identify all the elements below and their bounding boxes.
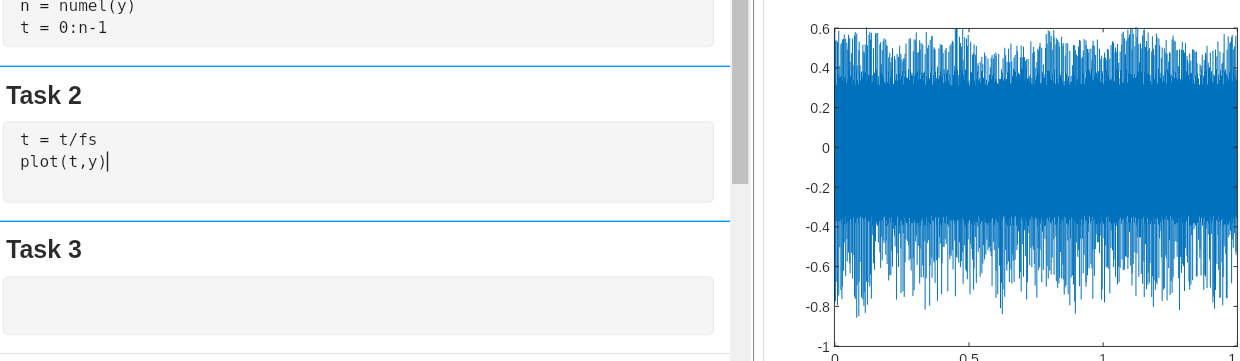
staticText: n = numel(y) xyxy=(20,0,137,15)
staticText: -1 xyxy=(710,339,830,355)
staticText: plot(t,y) xyxy=(20,152,108,171)
staticText: Task 3 xyxy=(6,235,82,263)
staticText: 1 xyxy=(1043,351,1163,361)
staticText: 0 xyxy=(775,351,895,361)
staticText: 0.2 xyxy=(710,100,830,116)
staticText: -0.2 xyxy=(710,180,830,196)
staticText: 0 xyxy=(710,140,830,156)
staticText: Task 2 xyxy=(6,81,82,109)
staticText: t = 0:n-1 xyxy=(20,18,108,37)
staticText: 0.4 xyxy=(710,60,830,76)
staticText: 1.5 xyxy=(1178,351,1240,361)
staticText: 0.5 xyxy=(909,351,1029,361)
staticText: -0.8 xyxy=(710,299,830,315)
staticText: -0.6 xyxy=(710,259,830,275)
staticText: t = t/fs xyxy=(20,130,98,149)
staticText: 0.6 xyxy=(710,21,830,37)
staticText: -0.4 xyxy=(710,219,830,235)
